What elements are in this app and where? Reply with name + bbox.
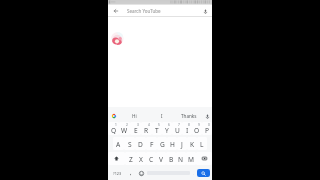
staticText: E	[134, 126, 138, 135]
button[interactable]: Hi	[120, 107, 148, 121]
staticText: C	[149, 155, 154, 164]
staticText: S	[128, 140, 132, 149]
staticText: G	[160, 140, 165, 149]
button[interactable]: I	[148, 107, 175, 121]
staticText: I	[161, 113, 163, 119]
button[interactable]: 3	[130, 122, 141, 135]
button[interactable]: Backspace	[196, 152, 212, 165]
button[interactable]: J	[177, 137, 187, 150]
button[interactable]: L	[197, 137, 207, 150]
button[interactable]: Back	[108, 5, 124, 17]
staticText: Y	[165, 126, 169, 135]
staticText: 6	[168, 123, 170, 127]
button[interactable]: Z	[125, 152, 136, 165]
button[interactable]: N	[176, 152, 186, 165]
button[interactable]: Shift	[108, 152, 125, 165]
button[interactable]: 4	[141, 122, 152, 135]
button[interactable]: V	[156, 152, 166, 165]
staticText: M	[188, 155, 194, 164]
staticText: N	[178, 155, 184, 164]
button[interactable]: H	[167, 137, 177, 150]
staticText: X	[139, 155, 143, 164]
staticText: ,	[130, 170, 132, 177]
button[interactable]: 8	[182, 122, 192, 135]
staticText: ?123	[113, 171, 122, 176]
button[interactable]: Thanks	[175, 107, 202, 121]
button[interactable]: 2	[119, 122, 130, 135]
staticText: H	[170, 140, 175, 149]
button[interactable]: 6	[162, 122, 172, 135]
button[interactable]: A	[113, 137, 124, 150]
staticText: D	[138, 140, 143, 149]
staticText: Z	[129, 155, 133, 164]
button[interactable]: 7	[172, 122, 182, 135]
button[interactable]: Emoji	[136, 166, 146, 180]
staticText: T	[155, 126, 159, 135]
button[interactable]: ?123	[108, 166, 126, 180]
staticText: Thanks	[181, 113, 197, 119]
staticText: 7	[178, 123, 180, 127]
button[interactable]: D	[135, 137, 146, 150]
staticText: L	[200, 140, 204, 149]
button[interactable]: B	[166, 152, 176, 165]
staticText: Hi	[132, 113, 137, 119]
staticText: .	[193, 171, 194, 176]
button[interactable]: X	[136, 152, 146, 165]
staticText: K	[190, 140, 195, 149]
staticText: Search YouTube	[127, 8, 161, 14]
staticText: B	[169, 155, 174, 164]
staticText: A	[116, 140, 121, 149]
button[interactable]: M	[186, 152, 196, 165]
staticText: 3	[137, 123, 139, 127]
button[interactable]: G	[157, 137, 167, 150]
staticText: V	[159, 155, 163, 164]
staticText: I	[186, 126, 189, 135]
button[interactable]: Voice search	[199, 5, 212, 17]
staticText: R	[144, 126, 149, 135]
button[interactable]: Google	[108, 107, 120, 121]
button[interactable]: 1	[108, 122, 119, 135]
button[interactable]: ,	[126, 166, 136, 180]
button[interactable]: 0	[202, 122, 212, 135]
staticText: P	[205, 126, 209, 135]
staticText: 8	[188, 123, 190, 127]
staticText: Q	[111, 126, 117, 135]
staticText: U	[175, 126, 180, 135]
button[interactable]: 5	[152, 122, 162, 135]
staticText: W	[121, 126, 128, 135]
staticText: 0	[208, 123, 210, 127]
button[interactable]: Search	[197, 169, 210, 177]
button[interactable]: Channel avatar	[111, 32, 124, 45]
button[interactable]: K	[187, 137, 197, 150]
button[interactable]: F	[146, 137, 157, 150]
staticText: F	[150, 140, 154, 149]
staticText: 5	[158, 123, 160, 127]
button[interactable]: S	[124, 137, 135, 150]
staticText: O	[194, 126, 200, 135]
button[interactable]: Voice input	[202, 107, 212, 121]
button[interactable]: C	[146, 152, 156, 165]
button[interactable]: 9	[192, 122, 202, 135]
staticText: 2	[126, 123, 128, 127]
staticText: 1	[115, 123, 117, 127]
staticText: 9	[198, 123, 200, 127]
staticText: 4	[148, 123, 150, 127]
staticText: J	[181, 140, 183, 149]
